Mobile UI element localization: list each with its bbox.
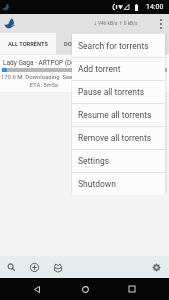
staticText: Resume all torrents <box>78 110 152 120</box>
button[interactable]: Settings <box>72 149 165 172</box>
button[interactable]: Pause all torrents <box>72 80 165 103</box>
staticText: Settings <box>78 156 110 166</box>
staticText: Search for torrents <box>78 41 149 51</box>
button[interactable]: Shutdown <box>72 172 165 195</box>
staticText: DOWNLOADING <box>64 41 105 48</box>
staticText: Add torrent <box>78 64 121 74</box>
button[interactable]: More options <box>152 14 169 33</box>
button[interactable]: ALL TORRENTS <box>0 33 56 54</box>
button[interactable]: Settings <box>149 260 164 275</box>
button[interactable]: Home <box>75 279 95 299</box>
button[interactable]: Open torrent file <box>50 260 65 275</box>
button[interactable]: Recent apps <box>122 279 142 299</box>
staticText: Pause all torrents <box>78 87 145 97</box>
button[interactable]: Search for torrents <box>72 34 165 57</box>
button[interactable]: Remove all torrents <box>72 126 165 149</box>
staticText: 14:00 <box>146 3 164 11</box>
staticText: Lady Gaga - ARTPOP (Deluxe Version) 2013… <box>3 59 141 67</box>
button[interactable]: Add torrent <box>27 260 42 275</box>
button[interactable]: Add torrent <box>72 57 165 80</box>
button[interactable]: Search <box>4 260 19 275</box>
staticText: Remove all torrents <box>78 133 152 143</box>
staticText: ETA: 5m5s <box>0 82 88 89</box>
staticText: ALL TORRENTS <box>8 41 48 48</box>
button[interactable]: Resume all torrents <box>72 103 165 126</box>
staticText: ↓ 946 kB/s ↑ 0 kB/s <box>93 21 138 27</box>
button[interactable]: DOWNLOADING <box>56 33 112 54</box>
staticText: 170.6 M Downloading Seeds 14 of 29 <box>1 74 102 81</box>
button[interactable]: Back <box>27 279 47 299</box>
staticText: Shutdown <box>78 179 116 189</box>
